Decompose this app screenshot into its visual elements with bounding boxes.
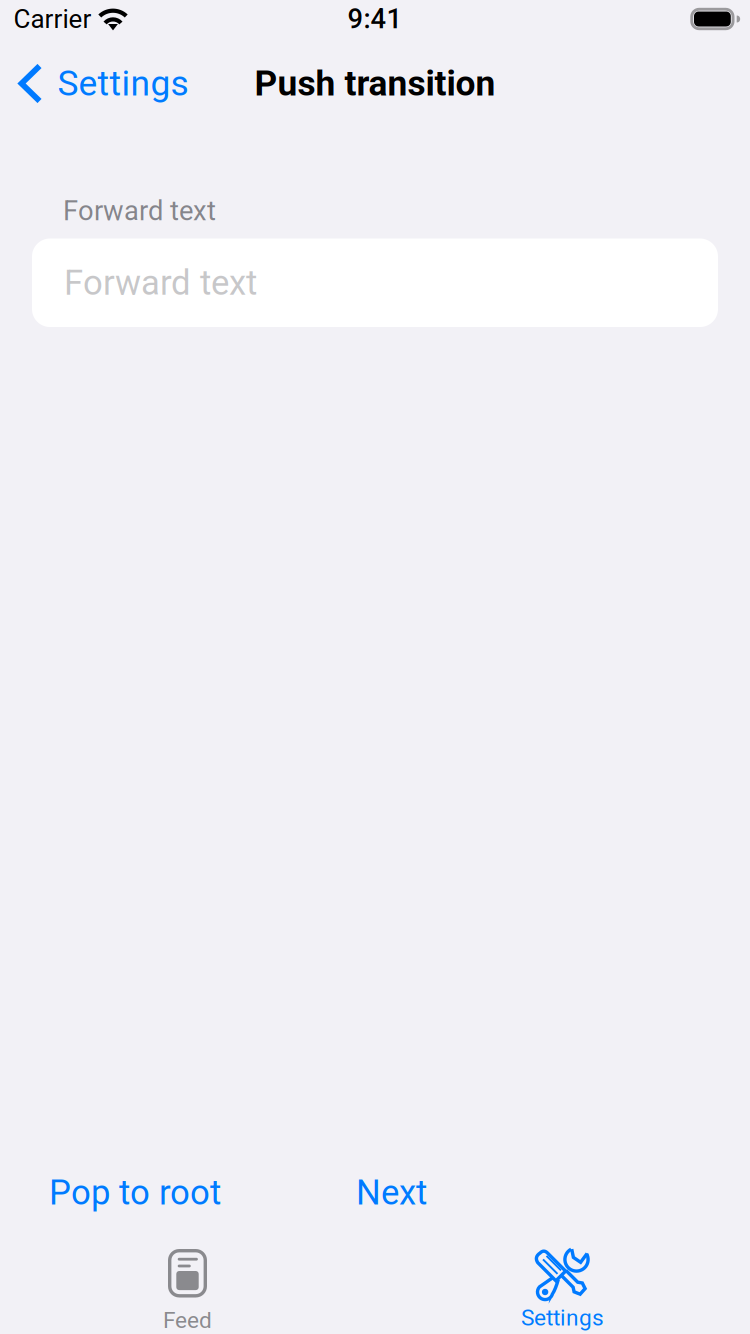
- button[interactable]: Settings: [0, 38, 198, 129]
- staticText: Push transition: [254, 63, 495, 104]
- button[interactable]: Forward text: [32, 238, 718, 327]
- staticText: 9:41: [347, 3, 402, 35]
- staticText: Carrier: [13, 4, 91, 34]
- button[interactable]: Settings: [375, 1240, 750, 1334]
- button[interactable]: Next: [344, 1162, 439, 1223]
- staticText: Forward text: [63, 195, 216, 227]
- staticText: Feed: [163, 1307, 212, 1334]
- staticText: Settings: [57, 63, 188, 104]
- staticText: Forward text: [64, 262, 257, 303]
- staticText: Next: [356, 1172, 427, 1213]
- staticText: Pop to root: [49, 1172, 221, 1213]
- staticText: Settings: [521, 1304, 604, 1331]
- button[interactable]: Feed: [0, 1240, 375, 1334]
- button[interactable]: Pop to root: [37, 1162, 233, 1223]
